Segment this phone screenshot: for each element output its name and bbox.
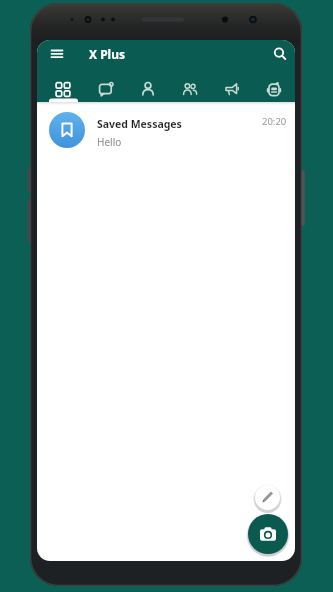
button[interactable] — [248, 514, 288, 554]
button[interactable] — [169, 67, 211, 102]
button[interactable]: Saved Messages — [37, 102, 295, 157]
button[interactable] — [255, 485, 280, 510]
button[interactable] — [127, 67, 169, 102]
button[interactable] — [46, 43, 68, 65]
button[interactable] — [253, 67, 295, 102]
staticText: X Plus — [89, 46, 126, 62]
staticText: 20:20 — [262, 115, 287, 128]
button[interactable] — [211, 67, 253, 102]
button[interactable] — [84, 67, 127, 102]
button[interactable] — [41, 67, 84, 102]
button[interactable] — [269, 43, 291, 65]
staticText: Hello — [97, 135, 122, 149]
staticText: Saved Messages — [97, 117, 182, 131]
